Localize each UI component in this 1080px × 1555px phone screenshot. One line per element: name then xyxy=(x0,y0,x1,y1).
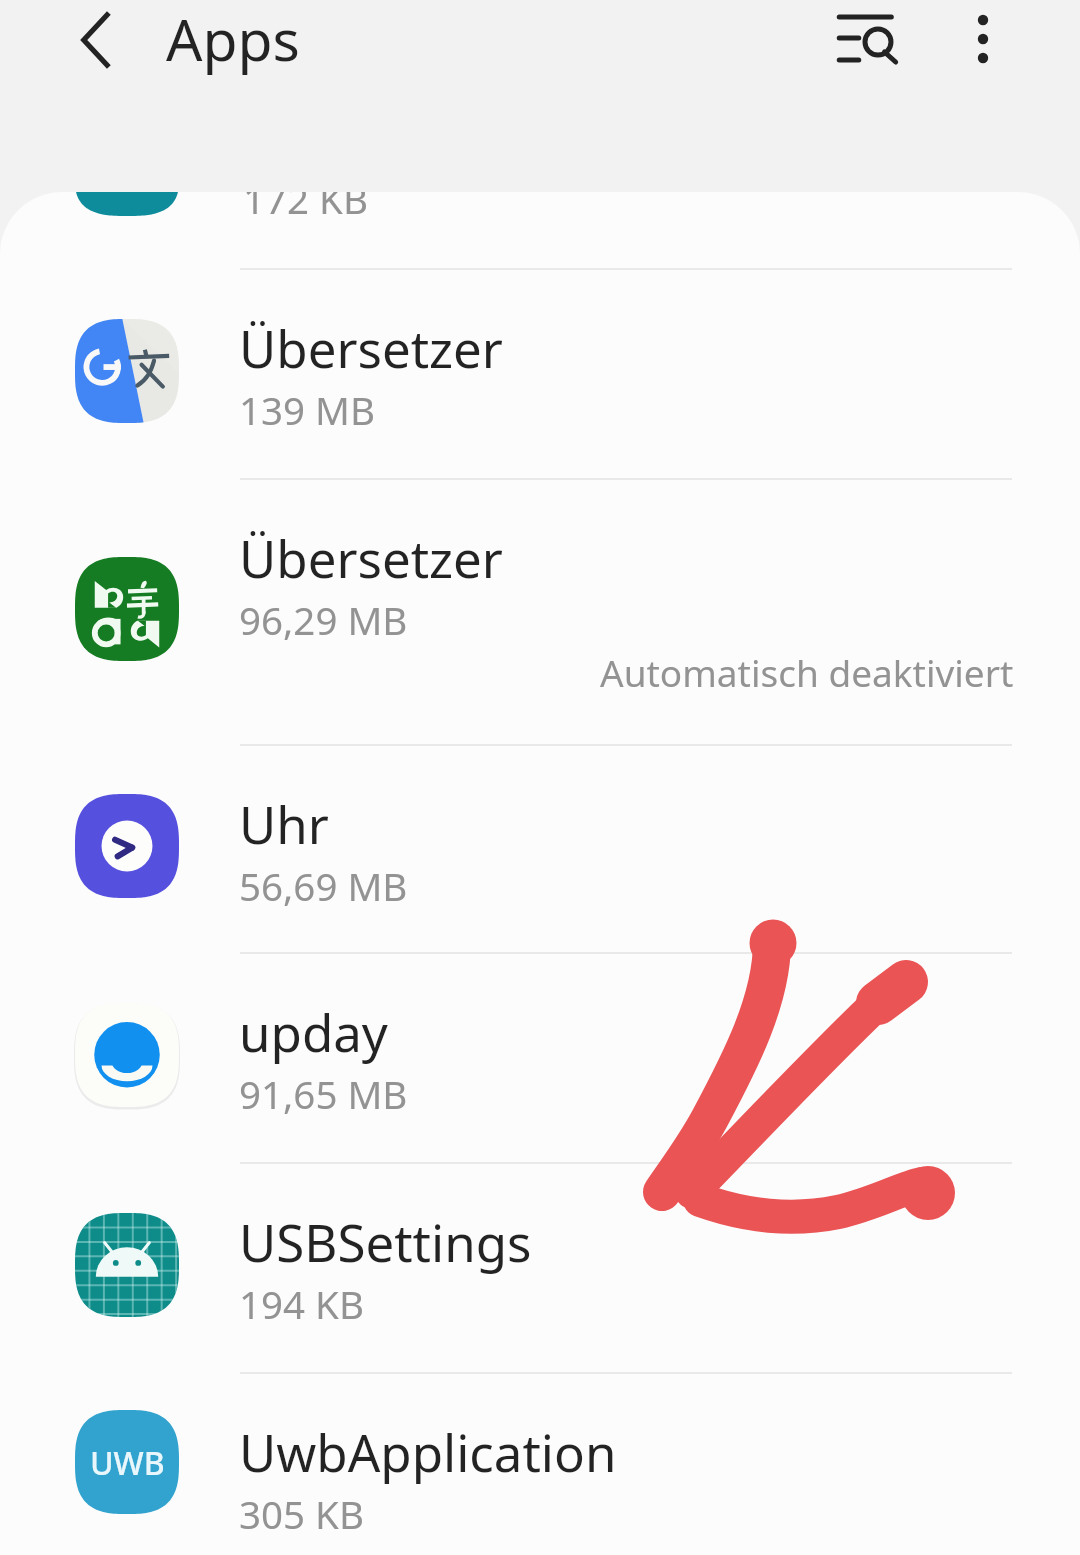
button[interactable]: upday xyxy=(0,954,1080,1162)
staticText: Uhr xyxy=(239,789,329,858)
staticText: 96,29 MB xyxy=(239,594,408,646)
button[interactable]: More options xyxy=(933,0,1033,89)
staticText: 172 KB xyxy=(243,192,368,225)
staticText: 139 MB xyxy=(239,384,376,436)
staticText: 305 KB xyxy=(239,1488,364,1540)
staticText: 194 KB xyxy=(239,1278,364,1330)
staticText: Automatisch deaktiviert xyxy=(600,647,1014,697)
staticText: UWB xyxy=(90,1441,165,1485)
staticText: UwbApplication xyxy=(239,1417,617,1486)
staticText: upday xyxy=(239,997,388,1066)
button[interactable]: USBSettings xyxy=(0,1164,1080,1372)
staticText: Übersetzer xyxy=(239,313,503,382)
button[interactable]: UWB xyxy=(0,1374,1080,1555)
staticText: 91,65 MB xyxy=(239,1068,408,1120)
staticText: Übersetzer xyxy=(239,523,503,592)
staticText: USBSettings xyxy=(239,1207,532,1276)
button[interactable]: Uhr xyxy=(0,746,1080,952)
button[interactable]: Übersetzer xyxy=(0,480,1080,744)
button[interactable]: Back xyxy=(50,0,146,88)
button[interactable]: Search xyxy=(814,0,924,94)
staticText: 56,69 MB xyxy=(239,860,408,912)
staticText: Apps xyxy=(166,0,300,78)
button[interactable]: Übersetzer xyxy=(0,270,1080,478)
